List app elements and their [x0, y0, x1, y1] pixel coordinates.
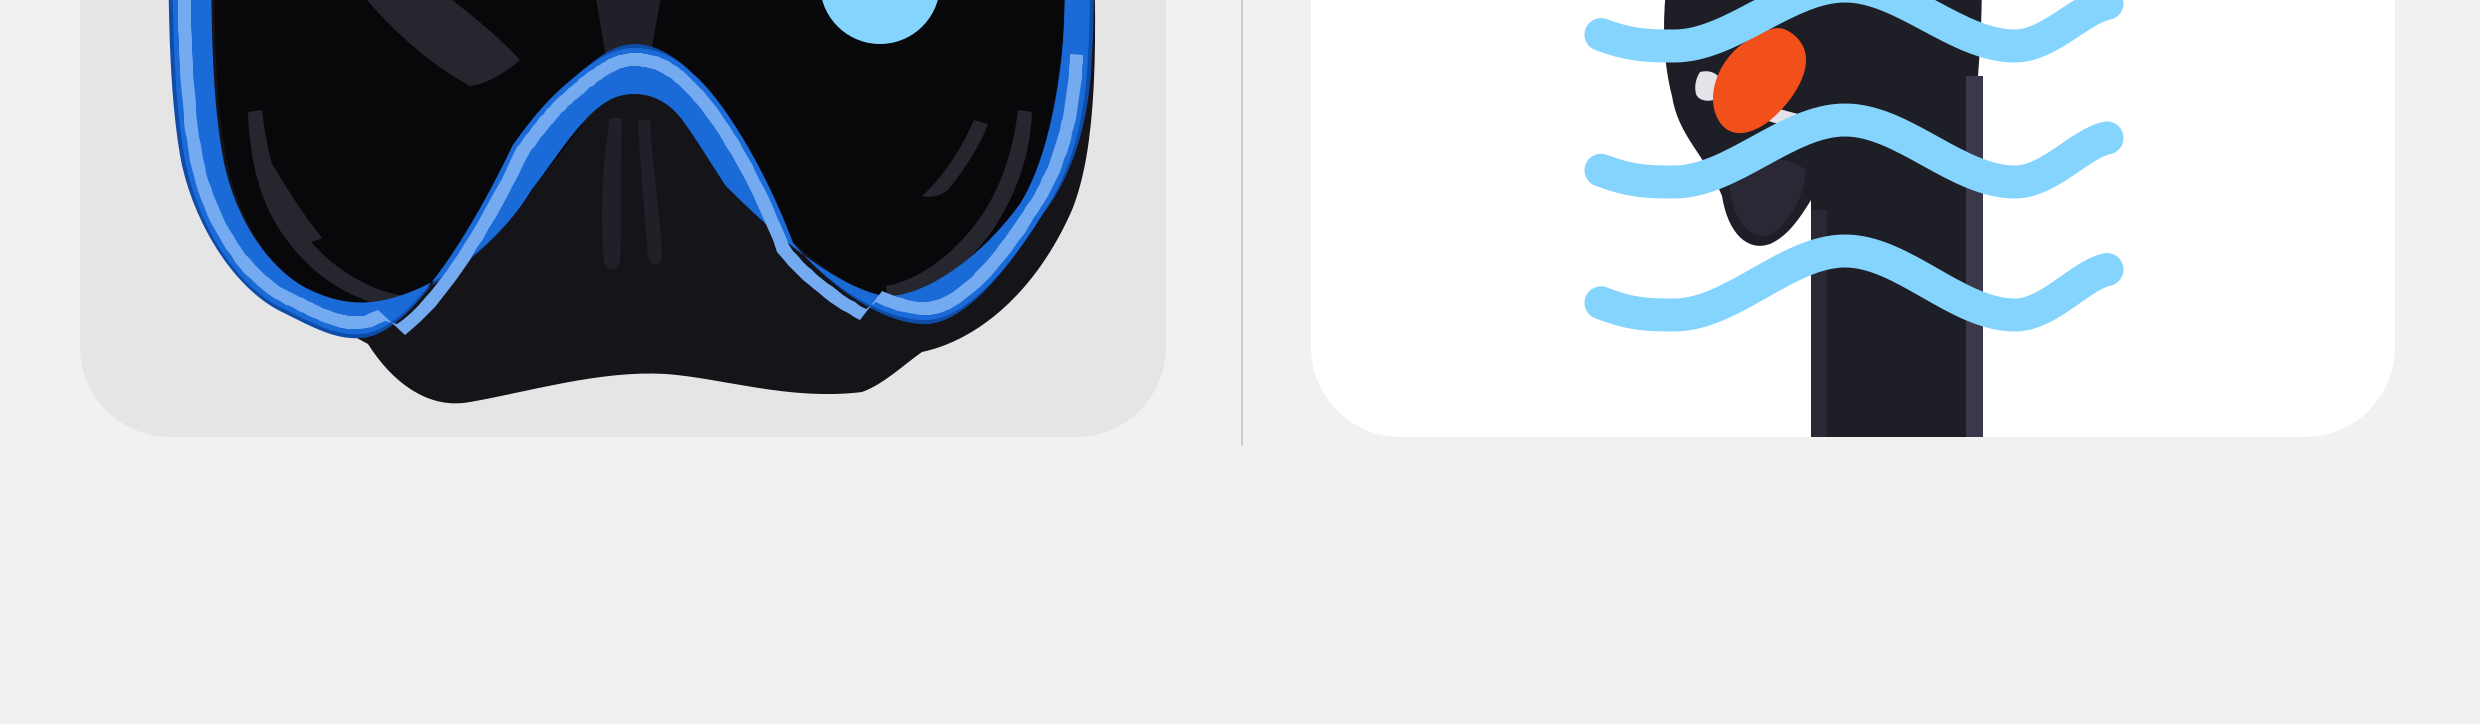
button[interactable]: Diving mask product photo	[80, 0, 1166, 437]
button[interactable]: Snorkel product photo	[1311, 0, 2395, 437]
